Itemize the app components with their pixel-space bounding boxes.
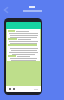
button[interactable]: Back [1, 5, 10, 14]
